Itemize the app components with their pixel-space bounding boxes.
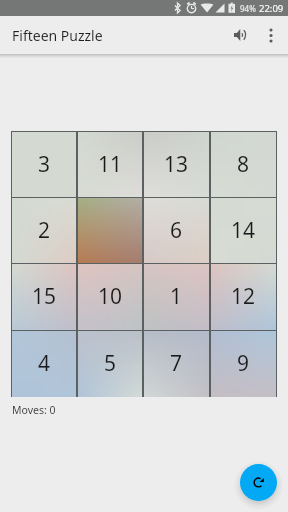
button[interactable]: 10	[78, 264, 142, 329]
staticText: 10	[98, 282, 123, 311]
staticText: 5	[104, 349, 117, 378]
staticText: 2	[38, 216, 51, 245]
staticText: 22:09	[259, 2, 284, 15]
button[interactable]: 4	[12, 331, 76, 396]
staticText: 7	[170, 349, 183, 378]
button[interactable]: 1	[144, 264, 209, 329]
button[interactable]: 14	[211, 198, 276, 262]
button[interactable]: 13	[144, 132, 209, 196]
staticText: 11	[98, 150, 123, 179]
button[interactable]: 2	[12, 198, 76, 262]
staticText: Fifteen Puzzle	[12, 26, 103, 45]
button[interactable]: 5	[78, 331, 142, 396]
button[interactable]: Restart	[240, 464, 277, 501]
staticText: 94%	[240, 3, 256, 14]
button[interactable]	[78, 198, 142, 262]
button[interactable]: 8	[211, 132, 276, 196]
button[interactable]: 9	[211, 331, 276, 396]
button[interactable]: 7	[144, 331, 209, 396]
button[interactable]: 3	[12, 132, 76, 196]
button[interactable]: 12	[211, 264, 276, 329]
staticText: 9	[237, 349, 250, 378]
staticText: 6	[170, 216, 183, 245]
staticText: 13	[164, 150, 189, 179]
button[interactable]: Sound	[222, 18, 256, 52]
button[interactable]: 11	[78, 132, 142, 196]
staticText: 1	[170, 282, 183, 311]
staticText: 14	[231, 216, 256, 245]
button[interactable]: 15	[12, 264, 76, 329]
button[interactable]: 6	[144, 198, 209, 262]
staticText: 12	[231, 282, 256, 311]
staticText: 3	[38, 150, 51, 179]
button[interactable]: More options	[256, 20, 286, 50]
staticText: 15	[32, 282, 57, 311]
staticText: 4	[38, 349, 51, 378]
staticText: 8	[237, 150, 250, 179]
staticText: Moves: 0	[12, 403, 56, 417]
